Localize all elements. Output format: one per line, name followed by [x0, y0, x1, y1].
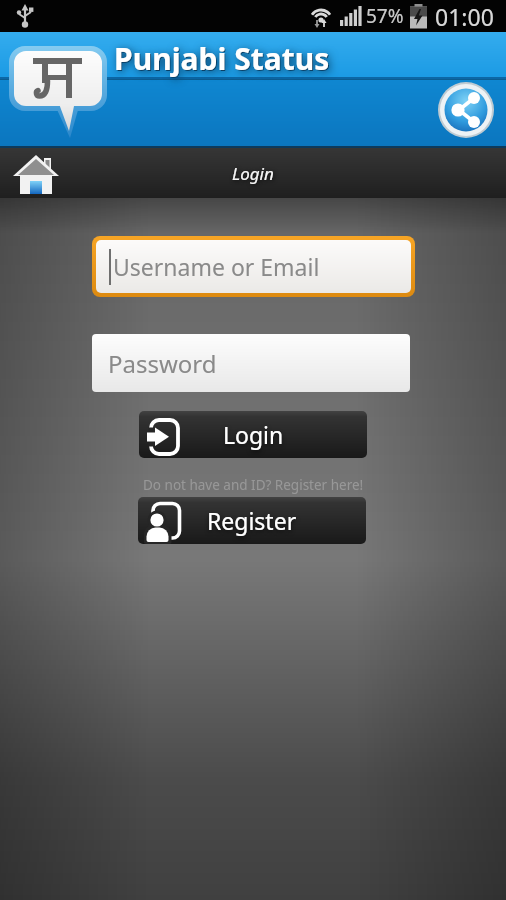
button[interactable]	[10, 152, 62, 198]
staticText: Punjabi Status	[114, 38, 330, 79]
staticText: Punjabi Status	[115, 39, 331, 80]
staticText: Register	[207, 505, 297, 536]
button[interactable]: Do not have and ID? Register here!	[143, 476, 364, 494]
button[interactable]: Password	[92, 334, 410, 392]
staticText: Login	[223, 419, 284, 450]
staticText: Do not have and ID? Register here!	[143, 476, 364, 494]
button[interactable]: Username or Email	[92, 236, 415, 297]
button[interactable]: Login	[139, 411, 367, 458]
staticText: 01:00	[435, 1, 494, 32]
staticText: 57%	[366, 3, 404, 29]
button[interactable]: Register	[138, 497, 366, 544]
staticText: Username or Email	[113, 251, 320, 282]
staticText: Login	[232, 162, 274, 185]
button[interactable]	[437, 81, 495, 139]
staticText: Password	[108, 347, 217, 380]
